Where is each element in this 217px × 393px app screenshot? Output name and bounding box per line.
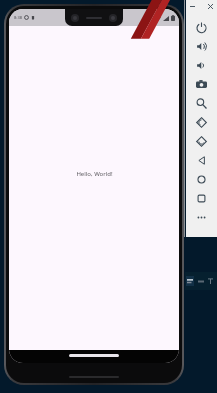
button[interactable]: Zoom — [186, 94, 217, 113]
button[interactable]: App — [208, 278, 213, 284]
button[interactable]: More — [186, 208, 217, 227]
button[interactable]: Home — [186, 170, 217, 189]
staticText: 8:38 — [14, 15, 22, 20]
button[interactable]: Rotate left — [186, 113, 217, 132]
button[interactable]: Volume up — [186, 37, 217, 56]
button[interactable]: Overview — [186, 189, 217, 208]
staticText: Hello, World! — [76, 170, 113, 178]
button[interactable]: Power — [186, 18, 217, 37]
button[interactable]: Take screenshot — [186, 75, 217, 94]
button[interactable]: Volume down — [186, 56, 217, 75]
button[interactable]: Rotate right — [186, 132, 217, 151]
button[interactable]: Close — [205, 1, 216, 12]
button[interactable]: Back — [186, 151, 217, 170]
button[interactable]: App — [198, 279, 204, 284]
button[interactable]: Minimize — [187, 1, 198, 12]
button[interactable]: Window — [186, 276, 194, 286]
button[interactable]: Home gesture handle — [69, 354, 119, 357]
